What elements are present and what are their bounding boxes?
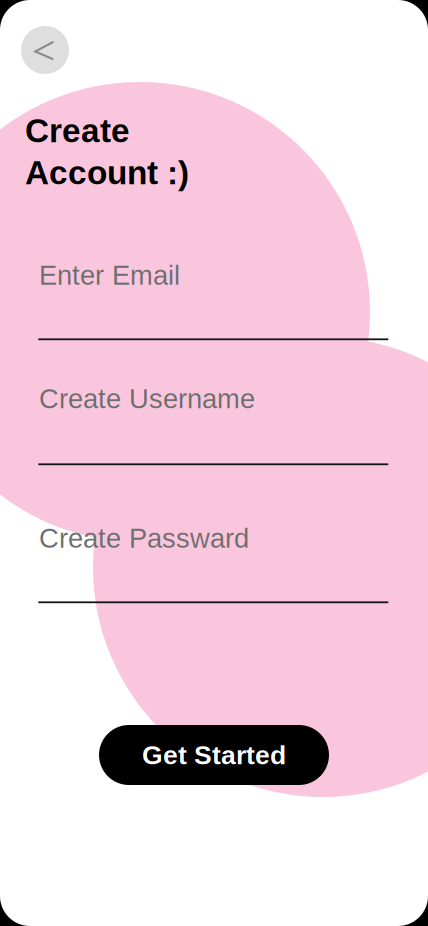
- staticText: Create: [25, 112, 130, 149]
- button[interactable]: Back: [21, 26, 69, 74]
- staticText: Create Passward: [39, 523, 249, 553]
- staticText: Account :): [25, 154, 189, 191]
- staticText: Enter Email: [39, 260, 180, 290]
- staticText: Create Username: [39, 383, 255, 414]
- staticText: Get Started: [142, 740, 286, 770]
- button[interactable]: Get Started: [99, 725, 329, 785]
